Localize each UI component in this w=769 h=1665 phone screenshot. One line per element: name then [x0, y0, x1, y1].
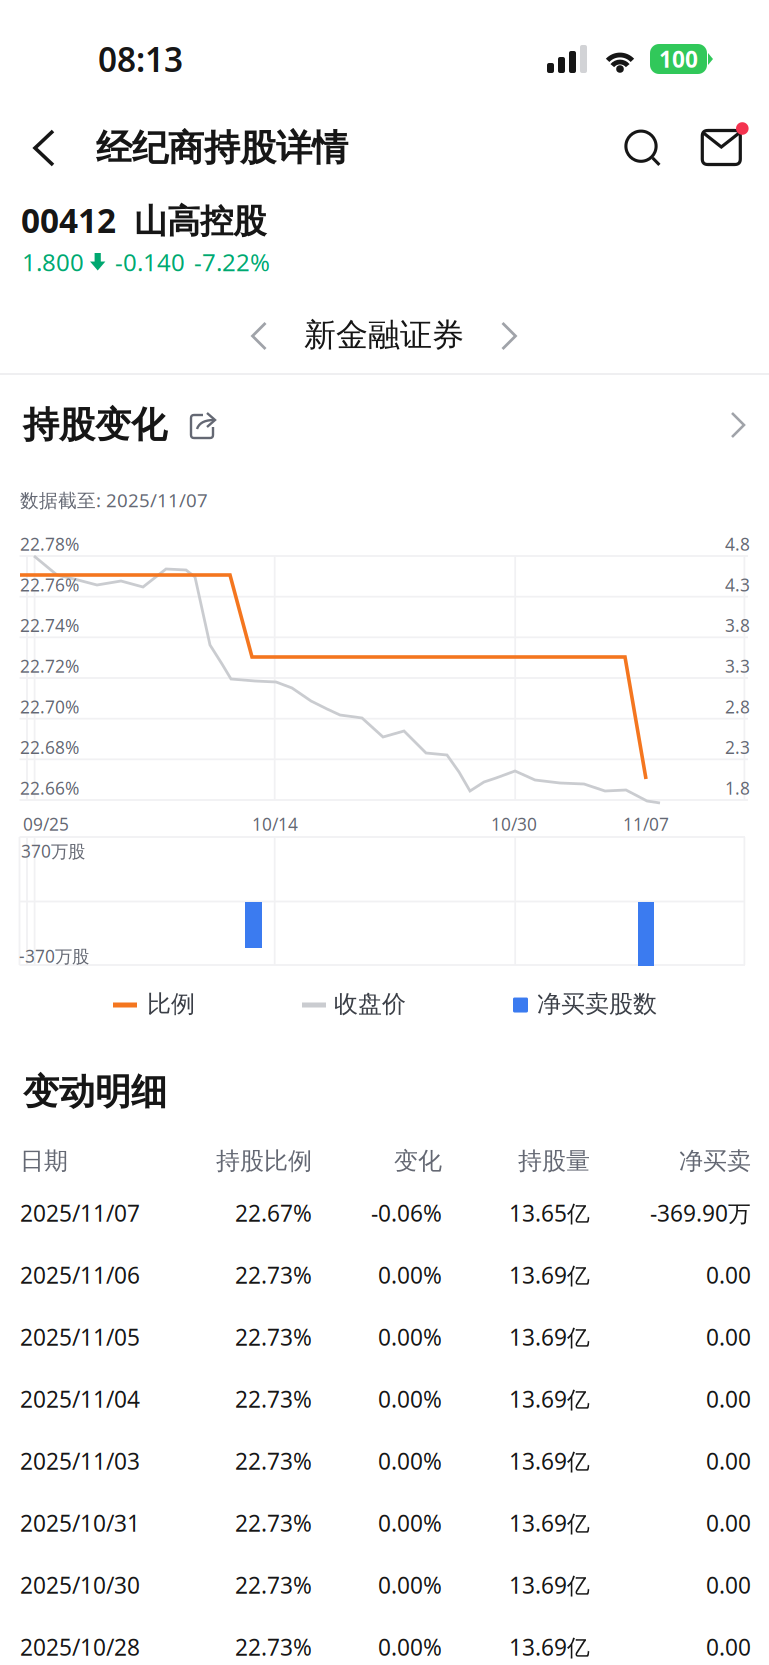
staticText: 3.3 [725, 654, 750, 677]
staticText: 日期 [20, 1146, 68, 1176]
staticText: 22.73% [235, 1632, 312, 1662]
staticText: 22.68% [20, 736, 79, 759]
staticText: 0.00 [706, 1260, 751, 1290]
staticText: 13.69亿 [509, 1322, 590, 1352]
staticText: 0.00 [706, 1570, 751, 1600]
staticText: 10/14 [252, 812, 298, 835]
staticText: -370万股 [19, 944, 89, 967]
staticText: 13.65亿 [509, 1198, 590, 1228]
staticText: 13.69亿 [509, 1446, 590, 1476]
staticText: 13.69亿 [509, 1508, 590, 1538]
staticText: 09/25 [23, 812, 69, 835]
staticText: 22.66% [20, 776, 79, 799]
staticText: 22.78% [20, 532, 79, 555]
staticText: 2025/11/03 [20, 1446, 140, 1476]
staticText: 3.8 [725, 614, 750, 637]
staticText: 00412 山高控股 [21, 198, 266, 242]
staticText: 新金融证券 [304, 315, 464, 355]
staticText: 2025/10/31 [20, 1508, 140, 1538]
staticText: 0.00% [378, 1508, 442, 1538]
staticText: 13.69亿 [509, 1260, 590, 1290]
staticText: 0.00% [378, 1446, 442, 1476]
button[interactable]: Search [611, 116, 675, 180]
staticText: 22.73% [235, 1446, 312, 1476]
staticText: 2025/11/07 [20, 1198, 140, 1228]
staticText: 22.72% [20, 654, 79, 677]
staticText: 22.73% [235, 1260, 312, 1290]
staticText: 0.00% [378, 1384, 442, 1414]
staticText: 13.69亿 [509, 1632, 590, 1662]
staticText: 2025/11/06 [20, 1260, 140, 1290]
staticText: 0.00 [706, 1508, 751, 1538]
staticText: 22.73% [235, 1508, 312, 1538]
staticText: 0.00 [706, 1446, 751, 1476]
staticText: 净买卖股数 [537, 989, 657, 1019]
staticText: 2.8 [725, 695, 750, 718]
staticText: 2.3 [725, 736, 750, 759]
staticText: 0.00 [706, 1384, 751, 1414]
staticText: 22.76% [20, 573, 79, 596]
staticText: 11/07 [623, 812, 669, 835]
staticText: 净买卖 [679, 1146, 751, 1176]
staticText: -369.90万 [650, 1198, 751, 1228]
staticText: 比例 [147, 989, 195, 1019]
staticText: 数据截至: 2025/11/07 [20, 488, 208, 512]
staticText: 13.69亿 [509, 1570, 590, 1600]
button[interactable]: Previous broker [229, 306, 289, 366]
staticText: 0.00 [706, 1632, 751, 1662]
staticText: 持股量 [518, 1146, 590, 1176]
button[interactable]: Back [12, 113, 76, 183]
staticText: 100 [659, 44, 698, 74]
staticText: 2025/11/05 [20, 1322, 140, 1352]
button[interactable]: 新金融证券 [284, 305, 484, 365]
staticText: 2025/10/30 [20, 1570, 140, 1600]
staticText: -7.22% [194, 246, 270, 278]
staticText: 持股比例 [216, 1146, 312, 1176]
staticText: 370万股 [21, 839, 85, 862]
staticText: 持股变化 [23, 403, 167, 447]
staticText: -0.06% [371, 1198, 442, 1228]
staticText: 收盘价 [334, 989, 406, 1019]
button[interactable]: Messages [690, 107, 758, 175]
staticText: 0.00% [378, 1260, 442, 1290]
staticText: 22.73% [235, 1570, 312, 1600]
staticText: -0.140 [115, 246, 185, 278]
staticText: 08:13 [98, 37, 183, 81]
staticText: 变动明细 [23, 1070, 167, 1114]
staticText: 变化 [394, 1146, 442, 1176]
staticText: 2025/10/28 [20, 1632, 140, 1662]
staticText: 1.800 [22, 246, 84, 278]
staticText: 22.74% [20, 614, 79, 637]
staticText: 0.00% [378, 1632, 442, 1662]
staticText: 22.70% [20, 695, 79, 718]
staticText: 1.8 [725, 776, 750, 799]
staticText: 22.67% [235, 1198, 312, 1228]
staticText: 2025/11/04 [20, 1384, 140, 1414]
staticText: 4.8 [725, 532, 750, 555]
staticText: 0.00% [378, 1570, 442, 1600]
staticText: 22.73% [235, 1322, 312, 1352]
button[interactable]: 持股变化 [0, 395, 769, 455]
staticText: 22.73% [235, 1384, 312, 1414]
staticText: 经纪商持股详情 [96, 126, 348, 170]
staticText: 0.00% [378, 1322, 442, 1352]
staticText: 13.69亿 [509, 1384, 590, 1414]
staticText: 4.3 [725, 573, 750, 596]
staticText: 10/30 [491, 812, 537, 835]
button[interactable]: Next broker [479, 306, 539, 366]
staticText: 0.00 [706, 1322, 751, 1352]
